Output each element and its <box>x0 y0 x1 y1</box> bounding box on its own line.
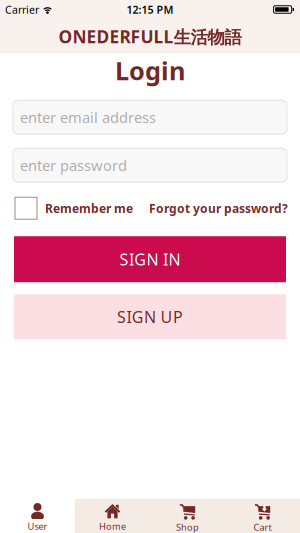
button[interactable]: SIGN UP <box>14 294 286 339</box>
staticText: Shop <box>176 521 199 533</box>
staticText: User <box>27 520 47 532</box>
button[interactable]: enter password <box>13 148 287 182</box>
staticText: enter email address <box>20 107 156 127</box>
staticText: Home <box>99 520 126 532</box>
staticText: Cart <box>253 521 271 533</box>
button[interactable]: Shop <box>150 499 225 533</box>
staticText: Carrier <box>5 2 39 17</box>
staticText: Remember me <box>45 200 133 216</box>
staticText: Forgot your password? <box>149 200 288 216</box>
staticText: 12:15 PM <box>126 2 173 17</box>
staticText: SIGN UP <box>117 306 183 327</box>
button[interactable]: enter email address <box>13 100 287 134</box>
staticText: enter password <box>20 155 127 175</box>
staticText: ONEDERFULL生活物語 <box>58 25 241 48</box>
button[interactable]: User <box>0 499 75 533</box>
staticText: Login <box>115 54 185 87</box>
button[interactable]: SIGN IN <box>14 236 286 282</box>
button[interactable]: Home <box>75 499 150 533</box>
button[interactable]: Forgot your password? <box>149 200 288 216</box>
button[interactable]: Cart <box>225 499 300 533</box>
button[interactable]: Remember me <box>15 197 133 219</box>
staticText: SIGN IN <box>120 249 180 270</box>
